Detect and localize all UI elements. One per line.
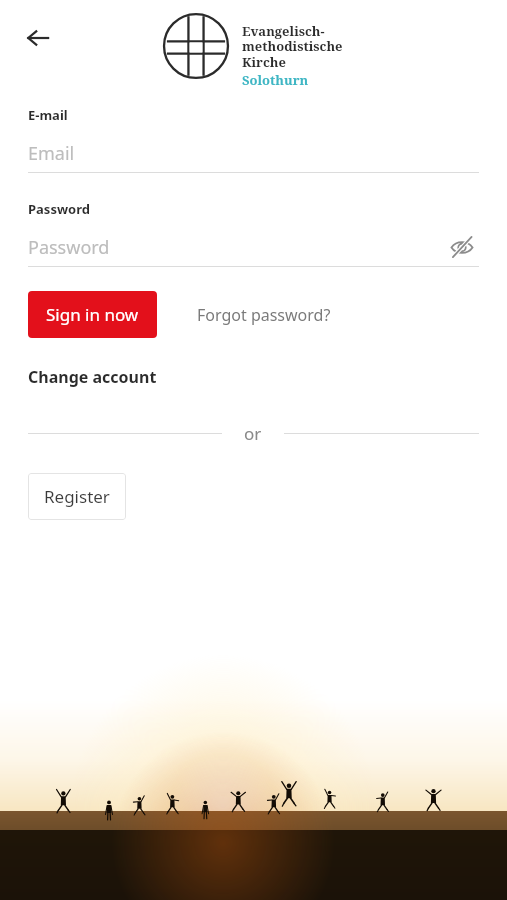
button[interactable]: Forgot password?	[197, 298, 331, 332]
button[interactable]: Email	[28, 138, 479, 168]
staticText: Forgot password?	[197, 304, 331, 326]
button[interactable]: Back	[16, 16, 60, 60]
staticText: Password	[28, 200, 90, 218]
staticText: Change account	[28, 366, 157, 388]
staticText: E-mail	[28, 106, 68, 124]
button[interactable]: Register	[28, 473, 126, 520]
staticText: Email	[28, 141, 75, 166]
button[interactable]: Password	[28, 235, 110, 260]
button[interactable]: Sign in now	[28, 291, 157, 338]
button[interactable]: Show password	[445, 232, 479, 262]
staticText: or	[244, 422, 262, 445]
staticText: Register	[44, 485, 110, 508]
staticText: Sign in now	[46, 303, 139, 326]
button[interactable]: Change account	[28, 362, 157, 392]
staticText: Solothurn	[242, 71, 309, 89]
staticText: Evangelisch- methodistische Kirche	[242, 22, 343, 71]
